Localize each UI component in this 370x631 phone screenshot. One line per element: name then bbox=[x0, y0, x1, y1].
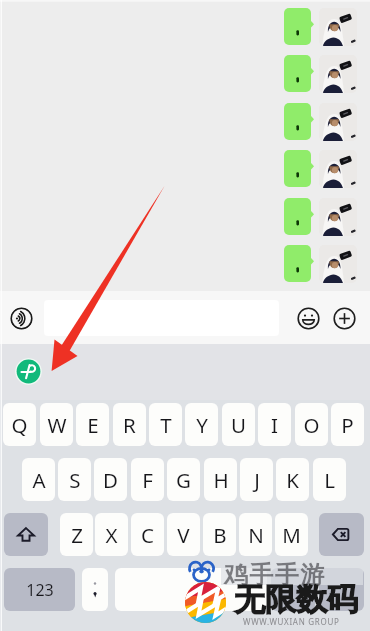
button[interactable]: L bbox=[313, 458, 346, 501]
staticText: 无限数码 bbox=[234, 580, 358, 619]
button[interactable]: I bbox=[258, 403, 291, 446]
button[interactable] bbox=[319, 103, 357, 141]
staticText: F bbox=[142, 466, 153, 494]
staticText: 123 bbox=[26, 579, 54, 601]
button[interactable] bbox=[319, 568, 364, 611]
button[interactable] bbox=[115, 568, 267, 611]
staticText: V bbox=[177, 521, 190, 549]
button[interactable]: 123 bbox=[4, 568, 75, 611]
staticText: E bbox=[87, 411, 99, 439]
button[interactable]: Y bbox=[185, 403, 218, 446]
button[interactable] bbox=[319, 55, 357, 93]
button[interactable]: Voice input bbox=[10, 307, 33, 330]
button[interactable]: P bbox=[331, 403, 364, 446]
button[interactable] bbox=[319, 198, 357, 236]
button[interactable] bbox=[44, 300, 279, 336]
staticText: B bbox=[213, 521, 227, 549]
staticText: D bbox=[103, 466, 118, 494]
staticText: Y bbox=[196, 411, 208, 439]
staticText: L bbox=[324, 466, 335, 494]
button[interactable]: M bbox=[275, 513, 308, 556]
button[interactable]: S bbox=[58, 458, 91, 501]
button[interactable]: K bbox=[276, 458, 309, 501]
button[interactable] bbox=[82, 568, 108, 611]
button[interactable]: C bbox=[131, 513, 164, 556]
button[interactable] bbox=[271, 568, 315, 611]
button[interactable] bbox=[319, 245, 357, 283]
button[interactable]: B bbox=[203, 513, 236, 556]
staticText: T bbox=[160, 411, 172, 439]
button[interactable]: W bbox=[40, 403, 73, 446]
button[interactable]: A bbox=[22, 458, 55, 501]
staticText: M bbox=[282, 521, 301, 549]
button[interactable]: X bbox=[95, 513, 128, 556]
staticText: WWW.WUXIAN GROUP bbox=[243, 616, 340, 627]
button[interactable]: G bbox=[167, 458, 200, 501]
staticText: W bbox=[47, 411, 67, 439]
staticText: X bbox=[105, 521, 118, 549]
button[interactable] bbox=[319, 8, 357, 46]
button[interactable]: H bbox=[204, 458, 237, 501]
staticText: R bbox=[123, 411, 136, 439]
staticText: N bbox=[248, 521, 264, 549]
button[interactable]: Q bbox=[3, 403, 36, 446]
staticText: O bbox=[303, 411, 320, 439]
staticText: Z bbox=[71, 521, 83, 549]
staticText: I bbox=[271, 411, 278, 439]
staticText: H bbox=[213, 466, 229, 494]
button[interactable]: N bbox=[239, 513, 272, 556]
button[interactable]: V bbox=[167, 513, 200, 556]
button[interactable]: J bbox=[240, 458, 273, 501]
button[interactable]: T bbox=[149, 403, 182, 446]
button[interactable]: D bbox=[94, 458, 127, 501]
staticText: K bbox=[286, 466, 299, 494]
button[interactable]: O bbox=[295, 403, 328, 446]
staticText: J bbox=[254, 466, 260, 494]
button[interactable]: Z bbox=[60, 513, 93, 556]
staticText: Q bbox=[11, 411, 28, 439]
button[interactable]: Emoji bbox=[297, 307, 320, 330]
staticText: S bbox=[69, 466, 81, 494]
staticText: U bbox=[231, 411, 246, 439]
button[interactable] bbox=[319, 150, 357, 188]
button[interactable]: E bbox=[76, 403, 109, 446]
button[interactable]: Mini program bbox=[15, 358, 42, 385]
staticText: A bbox=[32, 466, 46, 494]
button[interactable]: R bbox=[113, 403, 146, 446]
staticText: P bbox=[341, 411, 354, 439]
button[interactable] bbox=[319, 513, 364, 556]
button[interactable] bbox=[4, 513, 48, 556]
button[interactable]: More bbox=[333, 307, 356, 330]
button[interactable]: U bbox=[222, 403, 255, 446]
staticText: C bbox=[141, 521, 154, 549]
button[interactable]: F bbox=[131, 458, 164, 501]
staticText: G bbox=[176, 466, 191, 494]
staticText: 鸡手手游 bbox=[223, 560, 325, 590]
